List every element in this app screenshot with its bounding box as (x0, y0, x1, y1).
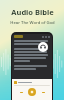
button[interactable]: Skip (19, 90, 24, 95)
button[interactable]: Skip (41, 90, 46, 95)
button[interactable]: Play (28, 88, 36, 96)
button[interactable]: Listen with headphones (38, 42, 48, 52)
button[interactable]: Option (11, 32, 53, 100)
button[interactable] (14, 35, 23, 38)
staticText: Hear The Word of God (10, 20, 55, 26)
staticText: Audio Bible (11, 7, 54, 17)
